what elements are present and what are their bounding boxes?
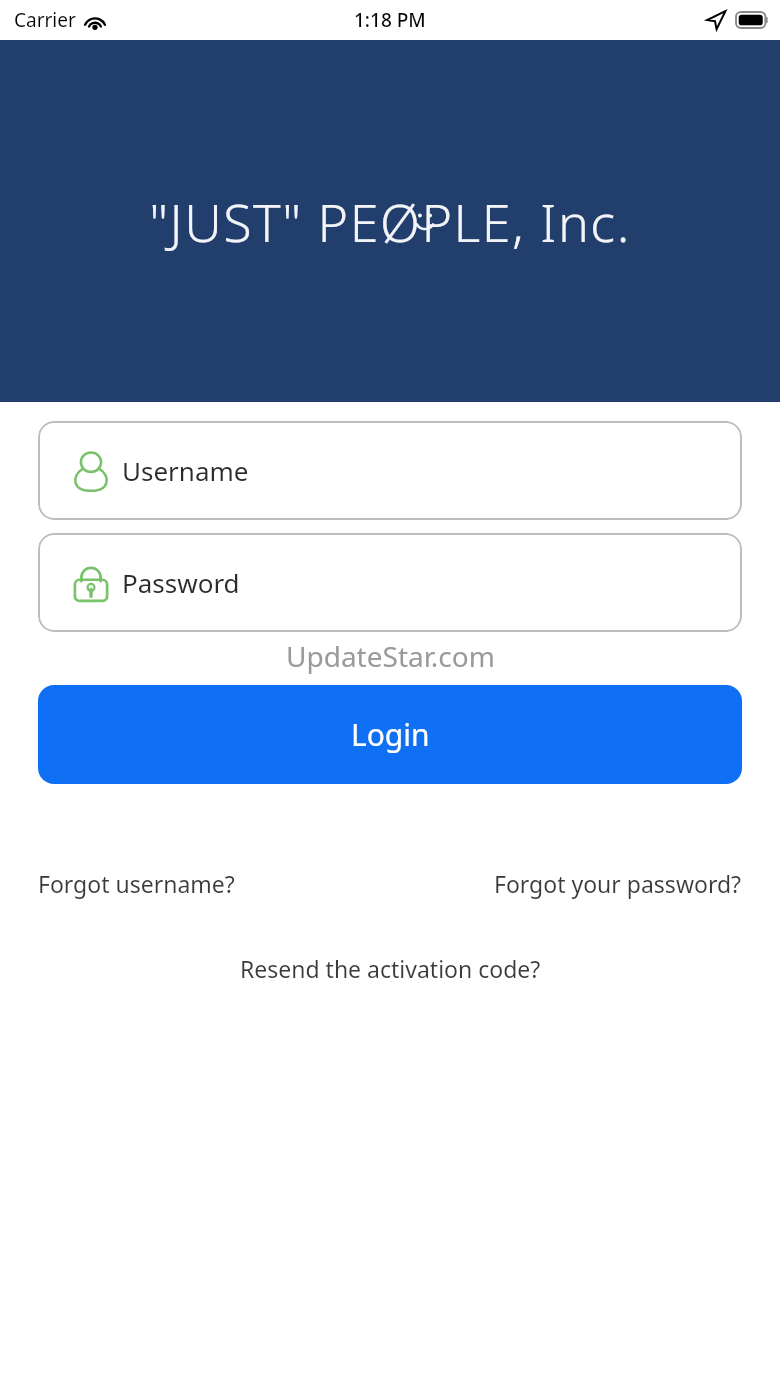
staticText: UpdateStar.com	[286, 637, 495, 675]
button[interactable]: Username	[38, 421, 742, 520]
staticText: Login	[351, 714, 430, 755]
staticText: Password	[122, 565, 240, 600]
staticText: Username	[122, 453, 249, 488]
button[interactable]: Forgot username?	[30, 862, 243, 905]
staticText: Resend the activation code?	[240, 953, 541, 984]
button[interactable]: Resend the activation code?	[232, 947, 549, 990]
staticText: Forgot your password?	[494, 868, 742, 899]
button[interactable]: Login	[38, 685, 742, 784]
staticText: Carrier	[14, 7, 76, 33]
button[interactable]: Password	[38, 533, 742, 632]
staticText: Forgot username?	[38, 868, 235, 899]
staticText: 1:18 PM	[354, 7, 426, 33]
staticText: "JUST" PEØPLE, Inc.	[149, 186, 631, 257]
button[interactable]: Forgot your password?	[486, 862, 750, 905]
